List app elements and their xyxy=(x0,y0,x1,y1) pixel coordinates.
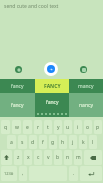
button[interactable]: u xyxy=(64,120,72,134)
staticText: 123# xyxy=(4,171,14,176)
button[interactable]: fancy xyxy=(0,79,35,93)
staticText: r xyxy=(37,124,40,131)
staticText: c xyxy=(37,154,40,161)
button[interactable]: i xyxy=(74,120,82,134)
button[interactable]: d xyxy=(29,135,37,149)
button[interactable]: k xyxy=(79,135,87,149)
button[interactable]: a xyxy=(7,135,16,149)
button[interactable]: s xyxy=(18,135,27,149)
staticText: y xyxy=(57,124,60,131)
staticText: w xyxy=(15,124,19,131)
staticText: fancy xyxy=(46,99,59,106)
button[interactable]: b xyxy=(54,150,62,165)
button[interactable]: nancy xyxy=(69,93,103,117)
staticText: j xyxy=(72,139,74,146)
staticText: send cute and cool text xyxy=(4,3,59,10)
staticText: k xyxy=(82,139,85,146)
staticText: d xyxy=(31,139,35,146)
button[interactable]: w xyxy=(12,120,21,134)
button[interactable]: Camera xyxy=(80,66,87,73)
staticText: FANCY xyxy=(44,83,61,90)
staticText: x xyxy=(27,154,30,161)
staticText: fancy xyxy=(11,102,24,109)
button[interactable]: n xyxy=(64,150,72,165)
button[interactable]: Shift xyxy=(1,150,12,165)
button[interactable]: y xyxy=(54,120,62,134)
button[interactable]: r xyxy=(34,120,42,134)
staticText: g xyxy=(51,139,55,146)
staticText: n xyxy=(66,154,70,161)
button[interactable]: mancy xyxy=(69,79,103,93)
button[interactable]: x xyxy=(24,150,32,165)
button[interactable]: Emoji xyxy=(15,66,22,73)
staticText: b xyxy=(56,154,60,161)
button[interactable]: v xyxy=(44,150,52,165)
staticText: a xyxy=(10,139,13,146)
button[interactable]: f xyxy=(39,135,47,149)
staticText: nancy xyxy=(79,102,93,109)
staticText: , xyxy=(22,170,24,177)
staticText: z xyxy=(17,154,20,161)
staticText: t xyxy=(47,124,49,131)
staticText: i xyxy=(77,124,79,131)
button[interactable]: . xyxy=(69,166,78,181)
staticText: f xyxy=(42,139,44,146)
button[interactable]: FANCY xyxy=(35,79,69,93)
staticText: h xyxy=(61,139,65,146)
button[interactable]: p xyxy=(94,120,102,134)
staticText: m xyxy=(76,154,81,161)
button[interactable]: fancy xyxy=(0,93,35,117)
staticText: p xyxy=(96,124,100,131)
staticText: o xyxy=(86,124,90,131)
button[interactable]: m xyxy=(74,150,82,165)
staticText: fancy xyxy=(11,83,24,90)
staticText: v xyxy=(47,154,50,161)
button[interactable]: o xyxy=(84,120,92,134)
button[interactable]: g xyxy=(49,135,57,149)
staticText: mancy xyxy=(78,83,94,90)
button[interactable]: e xyxy=(23,120,32,134)
staticText: u xyxy=(66,124,70,131)
button[interactable]: j xyxy=(69,135,77,149)
button[interactable]: t xyxy=(44,120,52,134)
button[interactable]: c xyxy=(34,150,42,165)
button[interactable]: z xyxy=(14,150,22,165)
button[interactable]: Backspace xyxy=(84,150,102,165)
staticText: e xyxy=(26,124,29,131)
staticText: s xyxy=(21,139,24,146)
button[interactable]: , xyxy=(19,166,27,181)
staticText: q xyxy=(4,124,8,131)
button[interactable]: h xyxy=(59,135,67,149)
button[interactable]: q xyxy=(1,120,10,134)
button[interactable]: Enter xyxy=(80,166,102,181)
button[interactable]: 123# xyxy=(1,166,17,181)
button[interactable]: Messenger xyxy=(44,62,58,76)
button[interactable]: l xyxy=(89,135,97,149)
button[interactable]: fancy xyxy=(35,93,69,117)
staticText: . xyxy=(73,170,75,177)
staticText: l xyxy=(92,139,94,146)
